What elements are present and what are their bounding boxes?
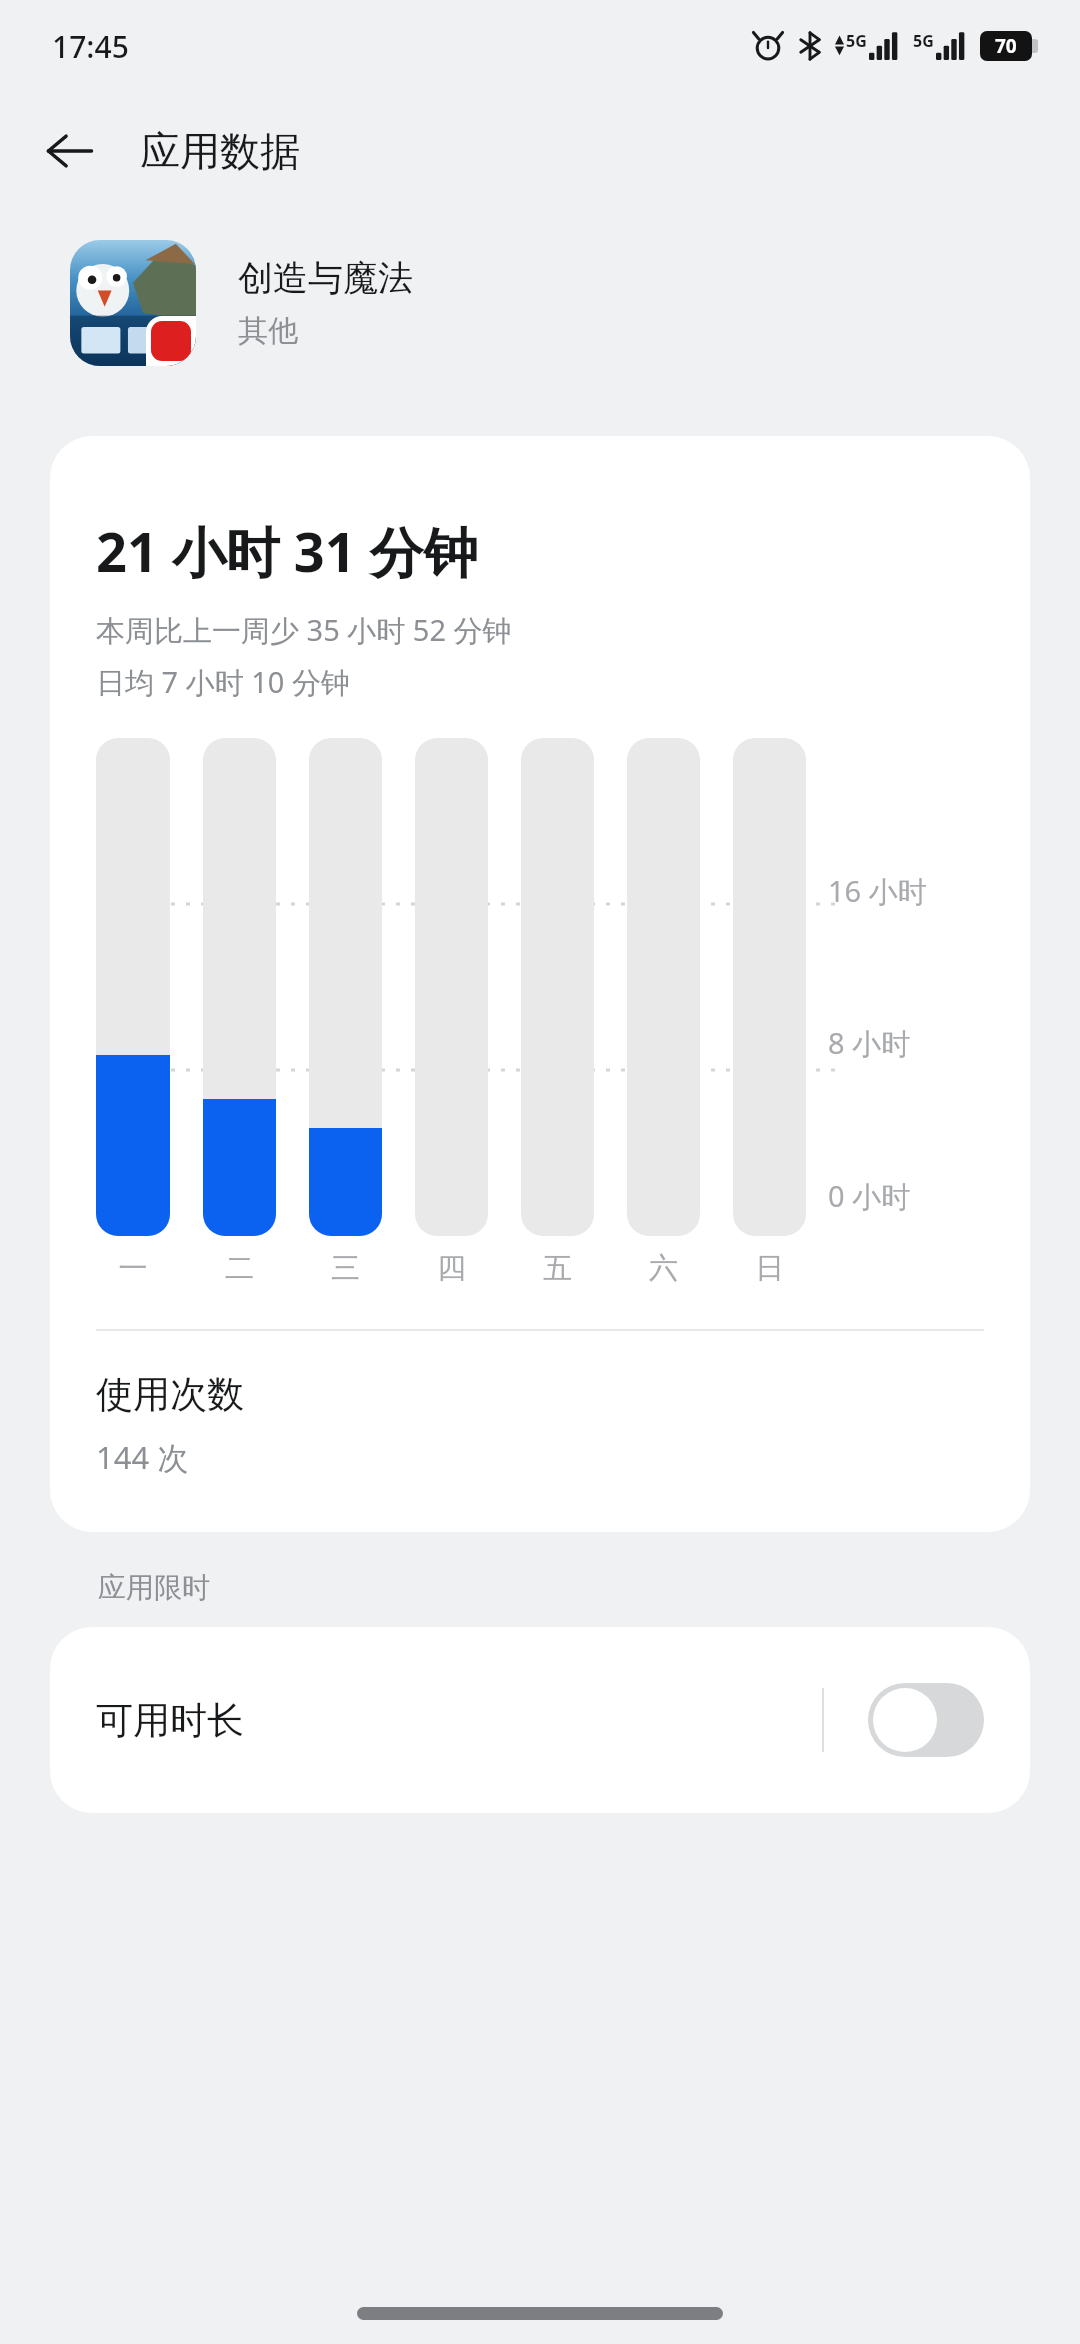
staticText: 日 bbox=[733, 1250, 806, 1287]
staticText: 5G bbox=[913, 30, 934, 52]
button[interactable]: 可用时长 bbox=[50, 1627, 1030, 1813]
staticText: 0 小时 bbox=[828, 1176, 911, 1216]
staticText: 使用次数 bbox=[96, 1371, 244, 1418]
button[interactable]: 创造与魔法 bbox=[70, 240, 1010, 366]
staticText: 其他 bbox=[238, 312, 298, 350]
staticText: 一 bbox=[96, 1250, 170, 1287]
staticText: 创造与魔法 bbox=[238, 256, 413, 300]
staticText: 本周比上一周少 35 小时 52 分钟 bbox=[96, 610, 512, 650]
staticText: 16 小时 bbox=[828, 871, 927, 911]
staticText: 日均 7 小时 10 分钟 bbox=[96, 662, 350, 702]
button[interactable]: 可用时长开关 bbox=[868, 1683, 984, 1757]
staticText: 二 bbox=[203, 1250, 276, 1287]
staticText: 三 bbox=[309, 1250, 382, 1287]
staticText: 四 bbox=[415, 1250, 488, 1287]
staticText: 可用时长 bbox=[96, 1697, 244, 1744]
staticText: 144 次 bbox=[96, 1436, 189, 1478]
staticText: 17:45 bbox=[52, 26, 129, 67]
staticText: 5G bbox=[846, 30, 867, 52]
staticText: 70 bbox=[995, 33, 1017, 59]
staticText: 六 bbox=[627, 1250, 700, 1287]
staticText: 应用数据 bbox=[140, 126, 300, 176]
staticText: 五 bbox=[521, 1250, 594, 1287]
button[interactable]: 返回 bbox=[30, 111, 110, 191]
staticText: 21 小时 31 分钟 bbox=[96, 514, 478, 588]
staticText: 8 小时 bbox=[828, 1023, 911, 1063]
staticText: 应用限时 bbox=[98, 1570, 210, 1605]
